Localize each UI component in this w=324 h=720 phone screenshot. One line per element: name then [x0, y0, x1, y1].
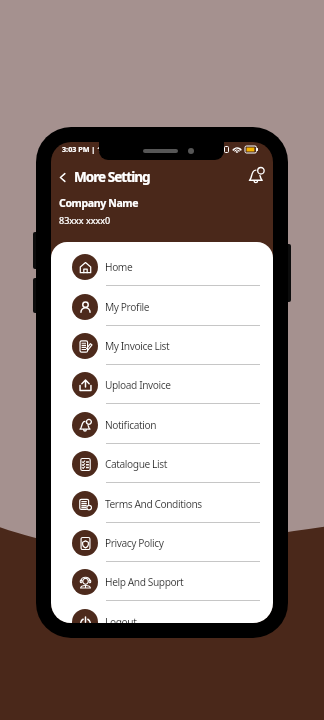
staticText: 83xxx xxxx0: [59, 214, 111, 226]
button[interactable]: Notifications: [248, 167, 265, 184]
button[interactable]: My Profile: [51, 287, 273, 326]
button[interactable]: Catalogue List: [51, 444, 273, 483]
staticText: Company Name: [59, 196, 139, 210]
button[interactable]: Terms And Conditions: [51, 484, 273, 523]
staticText: Logout: [105, 615, 137, 623]
button[interactable]: Notification: [51, 405, 273, 444]
staticText: Catalogue List: [105, 457, 167, 471]
staticText: My Profile: [105, 300, 150, 314]
staticText: Home: [105, 260, 133, 274]
other: Back: [56, 171, 69, 184]
staticText: Privacy Policy: [105, 536, 164, 550]
staticText: Terms And Conditions: [105, 497, 202, 511]
staticText: Help And Support: [105, 575, 184, 589]
staticText: My Invoice List: [105, 339, 170, 353]
button[interactable]: Upload Invoice: [51, 365, 273, 404]
button[interactable]: Back: [56, 168, 150, 186]
staticText: Upload Invoice: [105, 378, 171, 392]
button[interactable]: My Invoice List: [51, 326, 273, 365]
button[interactable]: Logout: [51, 602, 273, 623]
button[interactable]: Privacy Policy: [51, 523, 273, 562]
staticText: Notification: [105, 418, 157, 432]
button[interactable]: Help And Support: [51, 562, 273, 601]
staticText: More Setting: [74, 168, 150, 186]
button[interactable]: Home: [51, 247, 273, 286]
staticText: 3:03 PM | 1: [62, 144, 102, 154]
